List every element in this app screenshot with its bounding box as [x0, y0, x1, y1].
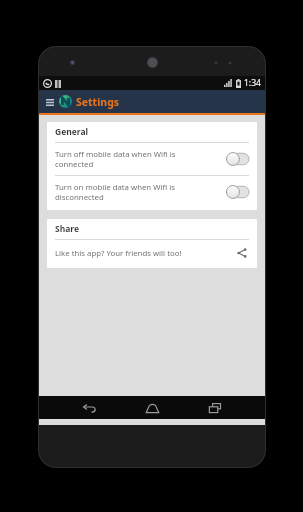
button[interactable]: Like this app? Your friends will too!: [47, 240, 257, 266]
staticText: 1:34: [244, 77, 261, 89]
button[interactable]: Turn on mobile data when Wifi is disconn…: [47, 176, 257, 208]
button[interactable]: Recent apps: [202, 398, 228, 418]
button[interactable]: Open navigation drawer: [43, 95, 57, 109]
button[interactable]: Turn off mobile data when Wifi is connec…: [47, 143, 257, 175]
button[interactable]: Toggle setting: [226, 185, 249, 199]
staticText: Turn on mobile data when Wifi is disconn…: [55, 182, 220, 202]
button[interactable]: Share: [235, 246, 249, 260]
staticText: General: [55, 126, 89, 138]
staticText: Settings: [76, 95, 120, 109]
button[interactable]: Back: [76, 398, 102, 418]
button[interactable]: Home: [139, 398, 165, 418]
button[interactable]: Toggle setting: [226, 152, 249, 166]
staticText: Like this app? Your friends will too!: [55, 248, 235, 259]
staticText: Turn off mobile data when Wifi is connec…: [55, 149, 220, 169]
staticText: Share: [55, 223, 80, 235]
